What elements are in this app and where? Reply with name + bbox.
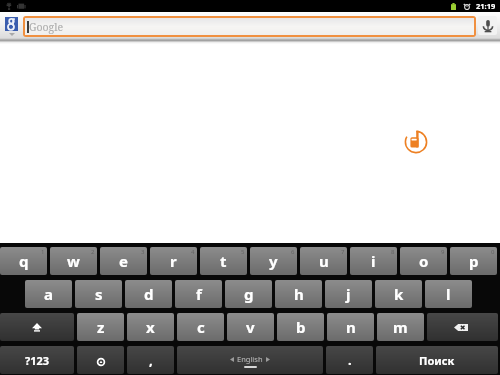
button[interactable]: p — [450, 247, 497, 275]
button[interactable] — [0, 313, 74, 341]
staticText: b — [296, 317, 306, 337]
button[interactable]: s — [75, 280, 122, 308]
button[interactable]: u — [300, 247, 347, 275]
staticText: q — [19, 251, 29, 271]
staticText: h — [294, 284, 304, 304]
button[interactable]: n — [327, 313, 374, 341]
staticText: n — [346, 317, 356, 337]
button[interactable]: d — [125, 280, 172, 308]
button[interactable]: v — [227, 313, 274, 341]
staticText: w — [67, 251, 80, 271]
button[interactable]: ?123 — [0, 346, 74, 374]
staticText: m — [393, 317, 408, 337]
button[interactable]: w — [50, 247, 97, 275]
staticText: z — [97, 317, 105, 337]
button[interactable]: m — [377, 313, 424, 341]
other: Backspace — [427, 313, 498, 341]
staticText: f — [196, 284, 202, 304]
other: Shift — [0, 313, 74, 341]
button[interactable]: r — [150, 247, 197, 275]
staticText: o — [419, 251, 429, 271]
staticText: 7 — [341, 248, 345, 256]
staticText: Поиск — [419, 353, 455, 368]
button[interactable]: y — [250, 247, 297, 275]
staticText: v — [246, 317, 255, 337]
other: Space, switch language — [177, 346, 323, 374]
staticText: a — [44, 284, 53, 304]
button[interactable]: b — [277, 313, 324, 341]
staticText: l — [446, 284, 451, 304]
staticText: d — [144, 284, 154, 304]
staticText: English — [237, 354, 263, 364]
staticText: r — [170, 251, 177, 271]
staticText: Google — [29, 20, 64, 34]
staticText: x — [146, 317, 155, 337]
staticText: . — [348, 351, 352, 369]
staticText: 6 — [291, 248, 295, 256]
staticText: j — [346, 284, 351, 304]
staticText: p — [469, 251, 479, 271]
staticText: 4 — [191, 248, 195, 256]
staticText: ?123 — [25, 353, 50, 368]
staticText: 9 — [441, 248, 445, 256]
staticText: 0 — [491, 248, 495, 256]
button[interactable]: j — [325, 280, 372, 308]
button[interactable]: Voice search — [478, 16, 497, 35]
button[interactable]: l — [425, 280, 472, 308]
button[interactable]: q — [0, 247, 47, 275]
staticText: e — [119, 251, 128, 271]
button[interactable]: x — [127, 313, 174, 341]
staticText: k — [394, 284, 404, 304]
button[interactable]: Search provider Google — [5, 17, 18, 31]
button[interactable] — [77, 346, 124, 374]
staticText: 21:19 — [476, 1, 496, 11]
button[interactable]: t — [200, 247, 247, 275]
staticText: 1 — [41, 248, 45, 256]
button[interactable] — [427, 313, 498, 341]
staticText: u — [319, 251, 329, 271]
staticText: 5 — [241, 248, 245, 256]
button[interactable]: k — [375, 280, 422, 308]
button[interactable]: e — [100, 247, 147, 275]
button[interactable]: Поиск — [376, 346, 498, 374]
staticText: g — [244, 284, 254, 304]
staticText: , — [149, 351, 153, 369]
button[interactable]: , — [127, 346, 174, 374]
button[interactable]: o — [400, 247, 447, 275]
staticText: y — [269, 251, 278, 271]
staticText: 2 — [91, 248, 95, 256]
button[interactable]: a — [25, 280, 72, 308]
button[interactable]: f — [175, 280, 222, 308]
button[interactable]: z — [77, 313, 124, 341]
button[interactable]: g — [225, 280, 272, 308]
button[interactable]: h — [275, 280, 322, 308]
button[interactable]: i — [350, 247, 397, 275]
staticText: 3 — [141, 248, 145, 256]
staticText: c — [197, 317, 205, 337]
button[interactable]: c — [177, 313, 224, 341]
other: Input options — [77, 346, 124, 374]
staticText: s — [95, 284, 103, 304]
staticText: i — [371, 251, 376, 271]
button[interactable]: . — [326, 346, 373, 374]
staticText: t — [220, 251, 227, 271]
button[interactable]: English — [177, 346, 323, 374]
button[interactable]: Google — [25, 18, 474, 35]
staticText: 8 — [391, 248, 395, 256]
